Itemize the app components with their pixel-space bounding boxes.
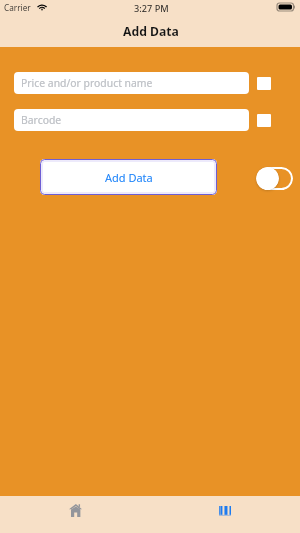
staticText: Add Data (105, 170, 153, 185)
button[interactable]: Scan barcode (150, 496, 300, 533)
button[interactable]: Toggle switch (257, 167, 293, 190)
button[interactable]: Toggle price field (257, 77, 271, 90)
staticText: 3:27 PM (134, 2, 169, 15)
button[interactable]: Add Data (40, 159, 217, 195)
button[interactable]: Home (0, 496, 150, 533)
staticText: Carrier (4, 2, 31, 13)
button[interactable]: Price and/or product name (14, 72, 249, 94)
staticText: Barcode (21, 113, 62, 127)
button[interactable]: Toggle barcode field (257, 114, 271, 127)
staticText: Price and/or product name (21, 76, 153, 90)
button[interactable]: Barcode (14, 109, 249, 131)
staticText: Add Data (123, 23, 179, 40)
